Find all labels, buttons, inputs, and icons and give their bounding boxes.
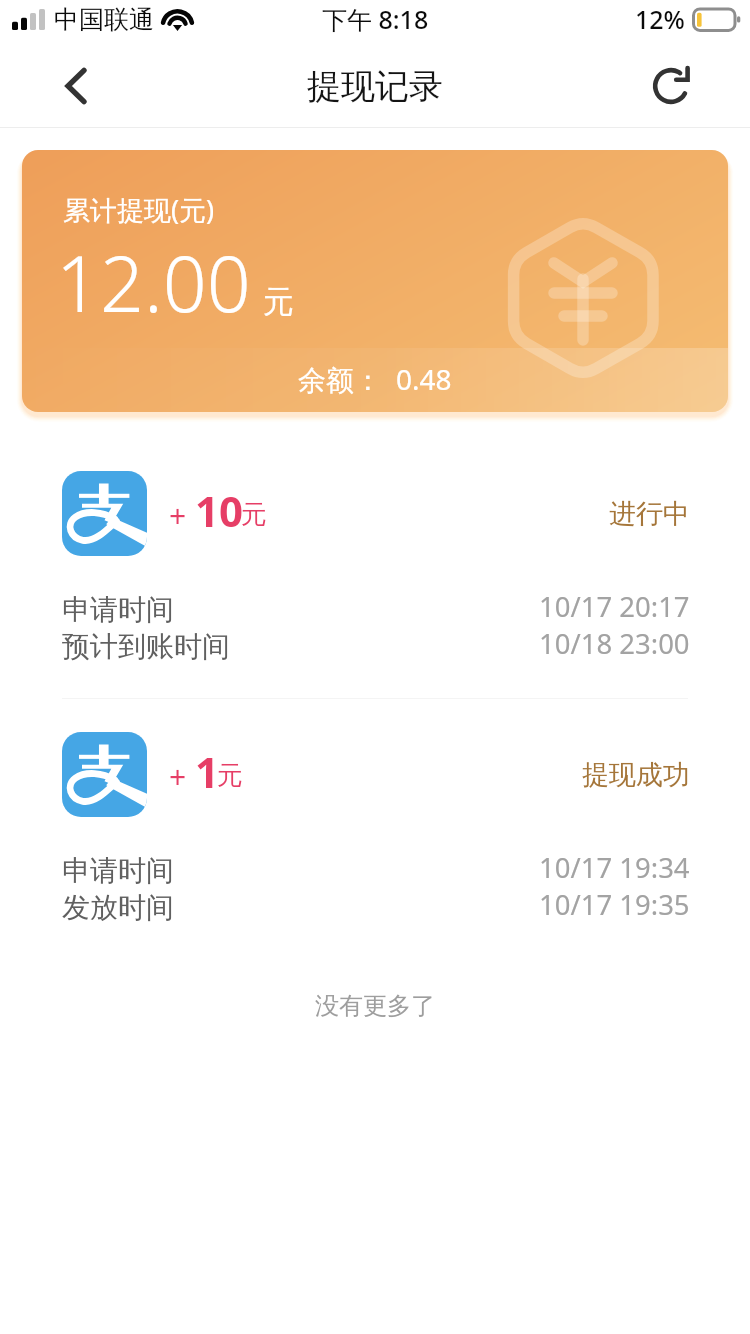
staticText: 1 bbox=[195, 743, 220, 800]
staticText: + bbox=[169, 495, 187, 536]
staticText: 元 bbox=[241, 498, 267, 531]
staticText: 元 bbox=[263, 282, 294, 321]
staticText: 10/18 23:00 bbox=[539, 625, 690, 662]
button[interactable]: 累计提现(元) bbox=[22, 150, 728, 412]
button[interactable]: + bbox=[22, 699, 728, 959]
staticText: 预计到账时间 bbox=[62, 629, 230, 664]
staticText: 12.00 bbox=[56, 230, 251, 335]
button[interactable]: Back bbox=[45, 55, 107, 117]
staticText: 余额： 0.48 bbox=[298, 360, 452, 398]
staticText: 下午 8:18 bbox=[322, 2, 429, 36]
staticText: 10/17 20:17 bbox=[539, 588, 690, 625]
staticText: 元 bbox=[217, 759, 243, 792]
staticText: + bbox=[169, 756, 187, 797]
staticText: 10/17 19:35 bbox=[539, 886, 690, 923]
staticText: 发放时间 bbox=[62, 890, 174, 925]
staticText: 12% bbox=[635, 2, 685, 36]
staticText: 进行中 bbox=[609, 497, 690, 531]
staticText: 10/17 19:34 bbox=[539, 849, 690, 886]
button[interactable]: + bbox=[22, 443, 728, 698]
staticText: 没有更多了 bbox=[0, 991, 750, 1021]
staticText: 中国联通 bbox=[54, 4, 154, 35]
staticText: 申请时间 bbox=[62, 592, 174, 627]
staticText: 10 bbox=[195, 482, 244, 539]
staticText: 申请时间 bbox=[62, 853, 174, 888]
button[interactable]: Refresh bbox=[641, 55, 703, 117]
staticText: 累计提现(元) bbox=[63, 191, 215, 228]
staticText: 提现成功 bbox=[582, 758, 690, 792]
staticText: 提现记录 bbox=[307, 65, 443, 108]
